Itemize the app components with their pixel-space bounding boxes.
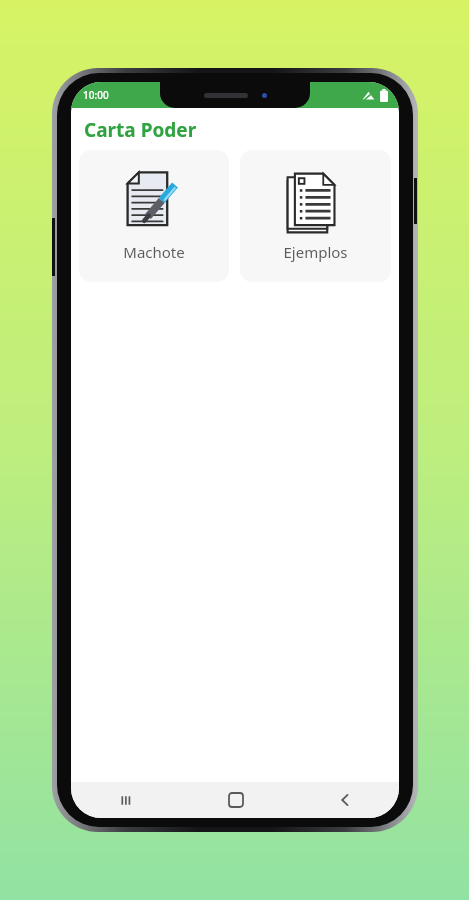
button[interactable]: Recent apps: [71, 782, 181, 818]
button[interactable]: Machote: [79, 150, 229, 282]
staticText: Ejemplos: [283, 242, 348, 262]
staticText: 10:00: [83, 88, 109, 102]
button[interactable]: Ejemplos: [240, 150, 391, 282]
staticText: Carta Poder: [84, 117, 197, 143]
button[interactable]: Back: [290, 782, 399, 818]
button[interactable]: Home: [181, 782, 290, 818]
staticText: Machote: [123, 242, 185, 262]
